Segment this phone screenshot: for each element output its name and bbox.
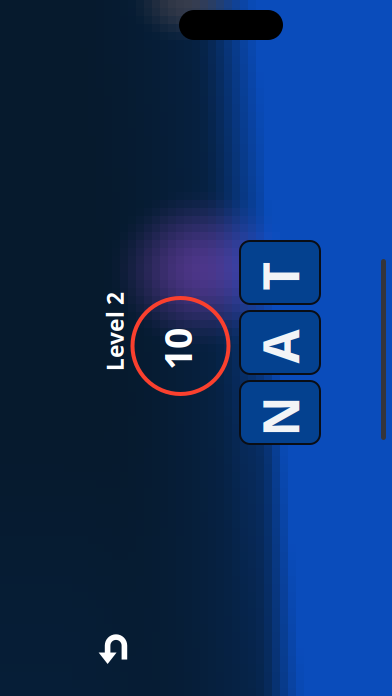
staticText: T [253,399,281,465]
button[interactable]: A [170,392,233,472]
button[interactable]: T [240,392,303,472]
staticText: 10 [174,305,216,354]
button[interactable]: Undo [95,628,139,672]
staticText: Level 2 [173,252,252,282]
